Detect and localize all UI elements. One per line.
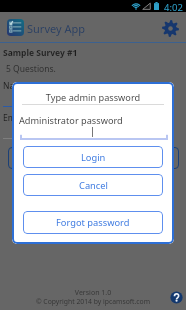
button[interactable]: Login [23, 146, 163, 168]
staticText: Cancel [79, 179, 108, 192]
staticText: Login [81, 151, 106, 164]
button[interactable]: Help [169, 290, 183, 304]
button[interactable]: Forgot password [23, 211, 163, 234]
button[interactable]: Settings [160, 18, 180, 38]
staticText: Type admin password [12, 91, 174, 104]
staticText: 5 Questions. [6, 63, 56, 75]
button[interactable]: Cancel [23, 174, 163, 196]
staticText: Survey App [27, 21, 85, 36]
staticText: Name [3, 80, 27, 92]
staticText: Email [3, 112, 25, 124]
staticText: © Copyright 2014 by ipcamsoft.com [0, 297, 186, 306]
staticText: Sample Survey #1 [3, 47, 78, 59]
staticText: Version 1.0 [0, 288, 186, 298]
staticText: 4:02 [164, 1, 183, 13]
staticText: Administrator password [19, 114, 123, 127]
staticText: Forgot password [56, 216, 130, 229]
button[interactable] [8, 147, 179, 169]
